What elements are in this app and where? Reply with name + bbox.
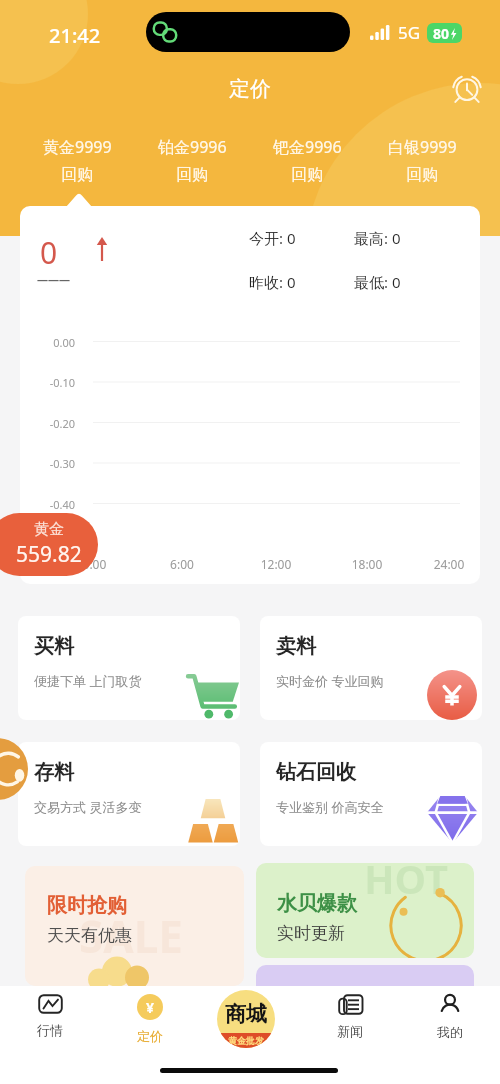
button[interactable]: 白银9999	[365, 136, 479, 185]
staticText: 定价	[137, 1028, 163, 1044]
staticText: 0	[40, 232, 58, 273]
staticText: 回购	[291, 165, 323, 185]
staticText: 12:00	[251, 556, 301, 572]
staticText: 卖料	[276, 634, 316, 659]
button[interactable]: SALE	[25, 866, 244, 986]
staticText: 行情	[37, 1022, 63, 1038]
button[interactable]: 钻石回收	[260, 742, 482, 846]
staticText: 存料	[34, 760, 74, 785]
button[interactable]: ¥	[114, 994, 186, 1044]
staticText: 实时更新	[277, 923, 345, 944]
staticText: 今开: 0	[249, 228, 296, 248]
button[interactable]: 我的	[414, 994, 486, 1040]
staticText: 黄金	[34, 520, 64, 539]
staticText: 21:42	[49, 22, 101, 49]
staticText: HOT	[364, 863, 449, 905]
button[interactable]: 买料	[18, 616, 240, 720]
staticText: 6:00	[157, 556, 207, 572]
staticText: -0.20	[20, 416, 75, 431]
button[interactable]: Customer service	[0, 738, 28, 800]
staticText: SALE	[79, 906, 183, 966]
staticText: 专业鉴别 价高安全	[276, 798, 384, 816]
staticText: 回购	[406, 165, 438, 185]
staticText: 水贝爆款	[277, 891, 357, 916]
staticText: 铂金9996	[158, 136, 227, 158]
staticText: 天天有优惠	[47, 925, 132, 946]
staticText: 回购	[61, 165, 93, 185]
staticText: 最低: 0	[354, 272, 401, 292]
staticText: -0.30	[20, 456, 75, 471]
staticText: 我的	[437, 1024, 463, 1040]
button[interactable]: 黄金9999	[20, 136, 134, 185]
staticText: 24:00	[424, 556, 474, 572]
staticText: 定价	[229, 76, 271, 102]
staticText: 钻石回收	[276, 760, 356, 785]
button[interactable]: 商城	[217, 990, 275, 1048]
button[interactable]: 钯金9996	[250, 136, 364, 185]
staticText: 新闻	[337, 1023, 363, 1039]
staticText: 交易方式 灵活多变	[34, 798, 142, 816]
staticText: 最高: 0	[354, 228, 401, 248]
staticText: 黄金9999	[43, 136, 112, 158]
staticText: 商城	[225, 1001, 267, 1027]
staticText: 559.82	[16, 540, 82, 569]
staticText: 钯金9996	[273, 136, 342, 158]
staticText: 5G	[398, 21, 421, 44]
staticText: ¥	[146, 998, 155, 1017]
staticText: 黄金批发	[228, 1035, 264, 1046]
staticText: 昨收: 0	[249, 272, 296, 292]
button[interactable]: HOT	[256, 863, 474, 958]
button[interactable]: 行情	[14, 994, 86, 1038]
staticText: 18:00	[342, 556, 392, 572]
staticText: 回购	[176, 165, 208, 185]
staticText: -0.10	[20, 375, 75, 390]
button[interactable]: Price alarm	[451, 73, 483, 105]
staticText: 00:00	[66, 556, 116, 572]
button[interactable]: 卖料	[260, 616, 482, 720]
button[interactable]: 存料	[18, 742, 240, 846]
staticText: ———	[37, 272, 70, 287]
staticText: 白银9999	[388, 136, 457, 158]
button[interactable]: 新闻	[314, 994, 386, 1039]
staticText: -0.40	[20, 497, 75, 512]
staticText: 限时抢购	[47, 893, 127, 918]
staticText: 80	[433, 24, 450, 43]
button[interactable]: 铂金9996	[135, 136, 249, 185]
staticText: 买料	[34, 634, 74, 659]
staticText: 便捷下单 上门取货	[34, 672, 142, 690]
staticText: 0.00	[20, 335, 75, 350]
staticText: 实时金价 专业回购	[276, 672, 384, 690]
